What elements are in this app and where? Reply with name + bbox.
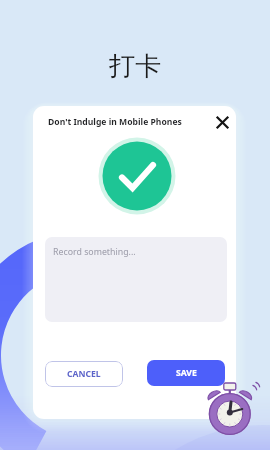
staticText: Record something... xyxy=(53,246,136,258)
other: Alarm clock xyxy=(0,0,270,450)
button[interactable]: Record something... xyxy=(45,237,227,322)
staticText: SAVE xyxy=(176,367,197,379)
button[interactable]: CANCEL xyxy=(45,361,123,387)
staticText: CANCEL xyxy=(67,368,101,380)
staticText: Don't Indulge in Mobile Phones xyxy=(48,116,182,128)
button[interactable]: Close xyxy=(212,112,232,132)
staticText: 打卡 xyxy=(109,50,161,83)
button[interactable]: SAVE xyxy=(147,360,225,386)
